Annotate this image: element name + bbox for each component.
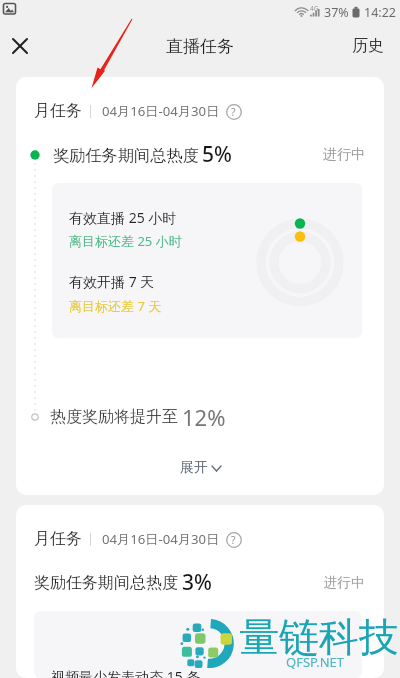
staticText: 离目标还差 25 小时	[69, 232, 182, 250]
staticText: 进行中	[324, 574, 365, 591]
staticText: 4G	[310, 4, 319, 13]
staticText: 5%	[202, 140, 232, 169]
staticText: 3%	[182, 568, 212, 597]
button[interactable]: 展开	[16, 456, 384, 480]
staticText: QFSP.NET	[286, 653, 345, 671]
staticText: 37%	[324, 4, 349, 21]
button[interactable]: Help	[225, 531, 242, 548]
button[interactable]: Help	[225, 103, 242, 120]
staticText: ?	[231, 533, 236, 547]
staticText: 月任务	[34, 101, 82, 121]
staticText: 量链科技	[239, 612, 399, 662]
staticText: 热度奖励将提升至	[50, 407, 178, 427]
staticText: 历史	[352, 36, 384, 56]
staticText: 奖励任务期间总热度	[53, 145, 199, 165]
staticText: 展开	[180, 459, 208, 477]
staticText: 月任务	[34, 529, 82, 549]
staticText: 04月16日-04月30日	[102, 530, 220, 548]
button[interactable]: 历史	[344, 28, 392, 64]
staticText: 有效直播 25 小时	[69, 208, 177, 227]
staticText: ?	[231, 105, 236, 119]
staticText: 12%	[182, 402, 226, 432]
staticText: 离目标还差 7 天	[69, 297, 162, 315]
staticText: 奖励任务期间总热度	[34, 573, 178, 593]
staticText: 直播任务	[166, 36, 234, 57]
staticText: 14:22	[364, 4, 396, 21]
staticText: 视频最少发表动态 15 条	[51, 667, 201, 678]
staticText: 进行中	[323, 146, 365, 164]
staticText: 04月16日-04月30日	[102, 102, 220, 120]
button[interactable]: Close	[0, 26, 40, 66]
staticText: 有效开播 7 天	[69, 272, 155, 291]
